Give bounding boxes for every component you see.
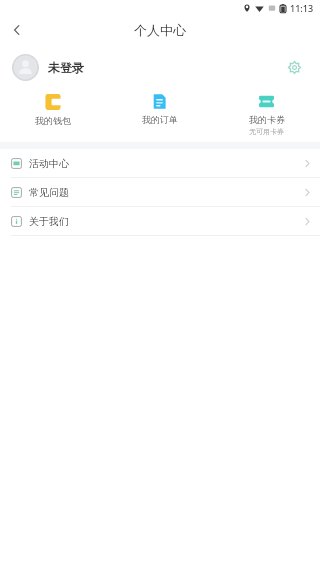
button[interactable]: Back [0, 16, 34, 44]
staticText: 未登录 [48, 60, 84, 75]
button[interactable]: 关于我们 [0, 207, 320, 235]
button[interactable]: 我的钱包 [0, 90, 106, 142]
button[interactable]: 活动中心 [0, 149, 320, 177]
staticText: 个人中心 [134, 22, 186, 38]
button[interactable]: Avatar [12, 54, 39, 81]
staticText: 我的卡券 [249, 114, 285, 125]
button[interactable]: 我的订单 [106, 90, 213, 142]
staticText: 无可用卡券 [249, 127, 284, 136]
staticText: 11:13 [290, 2, 314, 14]
staticText: 我的钱包 [35, 115, 71, 126]
staticText: 常见问题 [29, 186, 69, 199]
staticText: 我的订单 [142, 114, 178, 125]
staticText: 活动中心 [29, 157, 69, 170]
staticText: 关于我们 [29, 215, 69, 228]
button[interactable]: 常见问题 [0, 178, 320, 206]
button[interactable]: 我的卡券 [213, 90, 320, 142]
button[interactable]: Settings [280, 53, 308, 81]
